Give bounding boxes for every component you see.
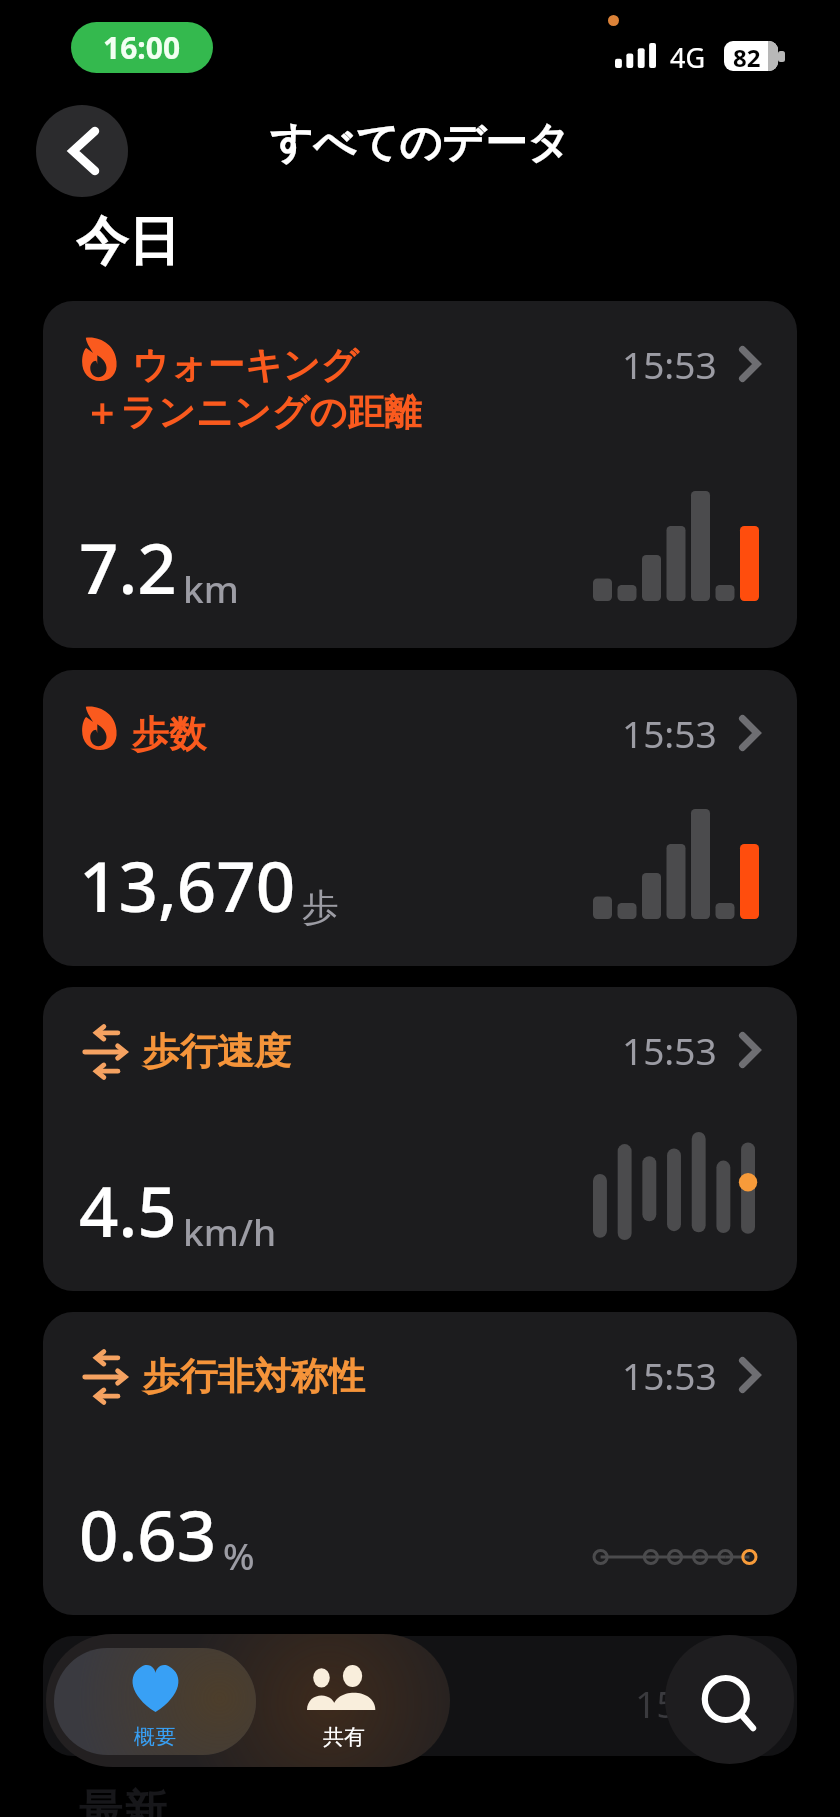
button[interactable]: Back <box>36 105 128 197</box>
staticText: 今日 <box>76 209 180 275</box>
staticText: km/h <box>183 1206 277 1256</box>
button[interactable]: 歩数 <box>43 670 797 966</box>
staticText: 歩数 <box>132 711 206 758</box>
staticText: 4G <box>670 39 706 76</box>
staticText: すべてのデータ <box>270 117 570 170</box>
staticText: ウォーキング <box>132 342 359 389</box>
staticText: ＋ランニングの距離 <box>83 389 422 436</box>
staticText: 概要 <box>134 1724 176 1750</box>
button[interactable]: 歩行非対称性 <box>43 1312 797 1615</box>
staticText: 15:53 <box>622 339 717 389</box>
staticText: 82 <box>733 41 761 71</box>
staticText: 0.63 <box>79 1487 217 1581</box>
button[interactable]: 15:53 <box>43 1636 797 1756</box>
staticText: 15:53 <box>622 1350 717 1400</box>
button[interactable]: 概要 <box>54 1648 256 1755</box>
staticText: 歩行速度 <box>143 1028 291 1075</box>
staticText: 歩行非対称性 <box>143 1353 365 1400</box>
staticText: 16:00 <box>103 27 181 68</box>
staticText: km <box>183 563 239 613</box>
staticText: 15:53 <box>622 708 717 758</box>
staticText: 歩 <box>302 884 339 931</box>
staticText: 15:53 <box>635 1678 730 1728</box>
staticText: 4.5 <box>79 1163 177 1257</box>
button[interactable]: Search <box>665 1635 794 1764</box>
staticText: % <box>223 1530 255 1580</box>
button[interactable]: ウォーキング <box>43 301 797 648</box>
button[interactable]: 共有 <box>256 1634 450 1767</box>
staticText: 共有 <box>323 1724 365 1750</box>
staticText: 最新 <box>79 1784 167 1817</box>
staticText: 7.2 <box>79 520 177 614</box>
button[interactable]: 歩行速度 <box>43 987 797 1291</box>
staticText: 13,670 <box>79 838 296 932</box>
staticText: 15:53 <box>622 1025 717 1075</box>
